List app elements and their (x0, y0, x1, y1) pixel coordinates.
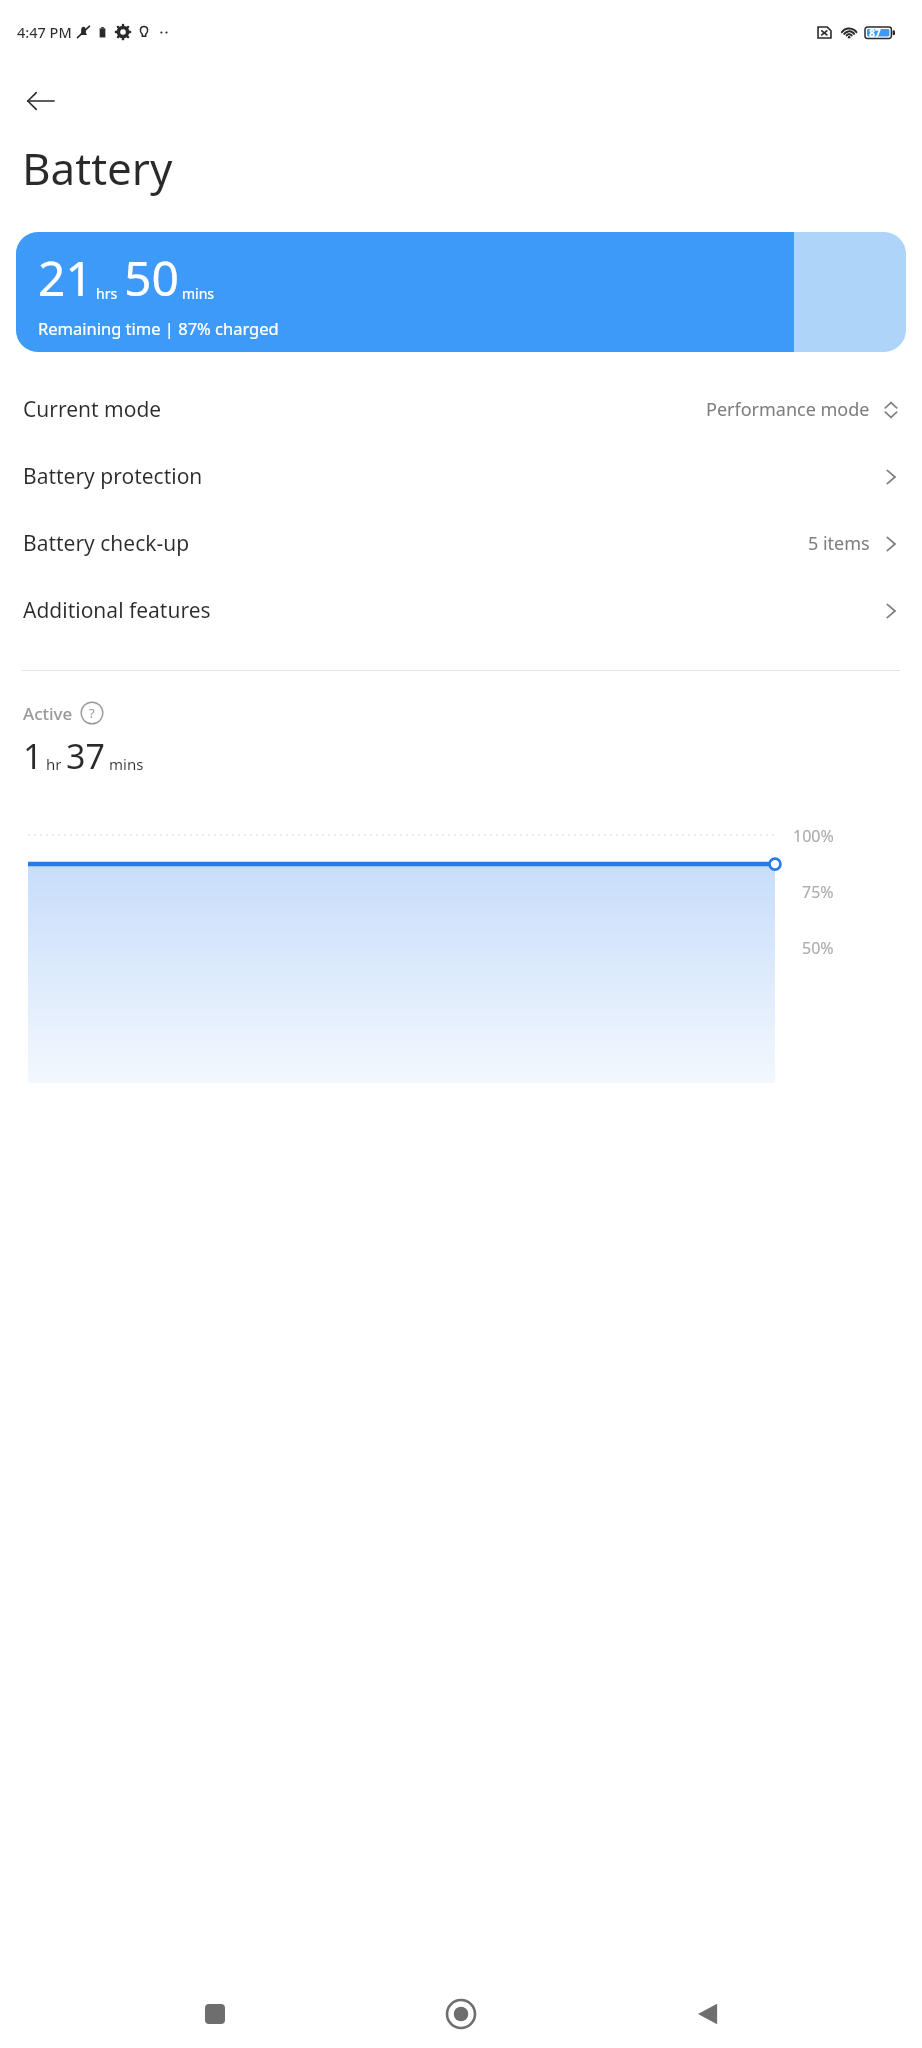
staticText: 21 (38, 245, 93, 310)
staticText: Battery (22, 138, 173, 198)
button[interactable]: Recent apps (183, 1982, 247, 2046)
staticText: mins (182, 284, 215, 303)
staticText: hr (46, 754, 62, 774)
staticText: 50% (802, 937, 834, 959)
staticText: 4:47 PM (17, 22, 72, 42)
button[interactable]: Current mode (0, 376, 922, 443)
staticText: Active (23, 702, 73, 725)
button[interactable]: Back (676, 1982, 740, 2046)
staticText: 87 (869, 26, 881, 40)
staticText: 37 (66, 733, 105, 779)
button[interactable]: Help about active time (80, 701, 104, 725)
staticText: Current mode (23, 395, 162, 424)
staticText: 100% (793, 825, 834, 847)
staticText: 1 (23, 733, 43, 779)
button[interactable]: Additional features (0, 577, 922, 644)
button[interactable]: 21 (16, 232, 906, 352)
button[interactable]: Home (429, 1982, 493, 2046)
staticText: ? (89, 704, 95, 722)
staticText: Performance mode (706, 397, 870, 422)
button[interactable]: Battery protection (0, 443, 922, 510)
button[interactable]: Back (14, 74, 68, 128)
staticText: Remaining time | 87% charged (38, 317, 279, 339)
staticText: Battery check-up (23, 529, 190, 558)
staticText: Battery protection (23, 462, 203, 491)
staticText: hrs (96, 284, 118, 303)
button[interactable]: Battery check-up (0, 510, 922, 577)
staticText: Additional features (23, 596, 211, 625)
staticText: mins (109, 754, 144, 774)
staticText: 75% (802, 881, 834, 903)
staticText: 50 (124, 245, 179, 310)
staticText: 5 items (808, 531, 870, 556)
